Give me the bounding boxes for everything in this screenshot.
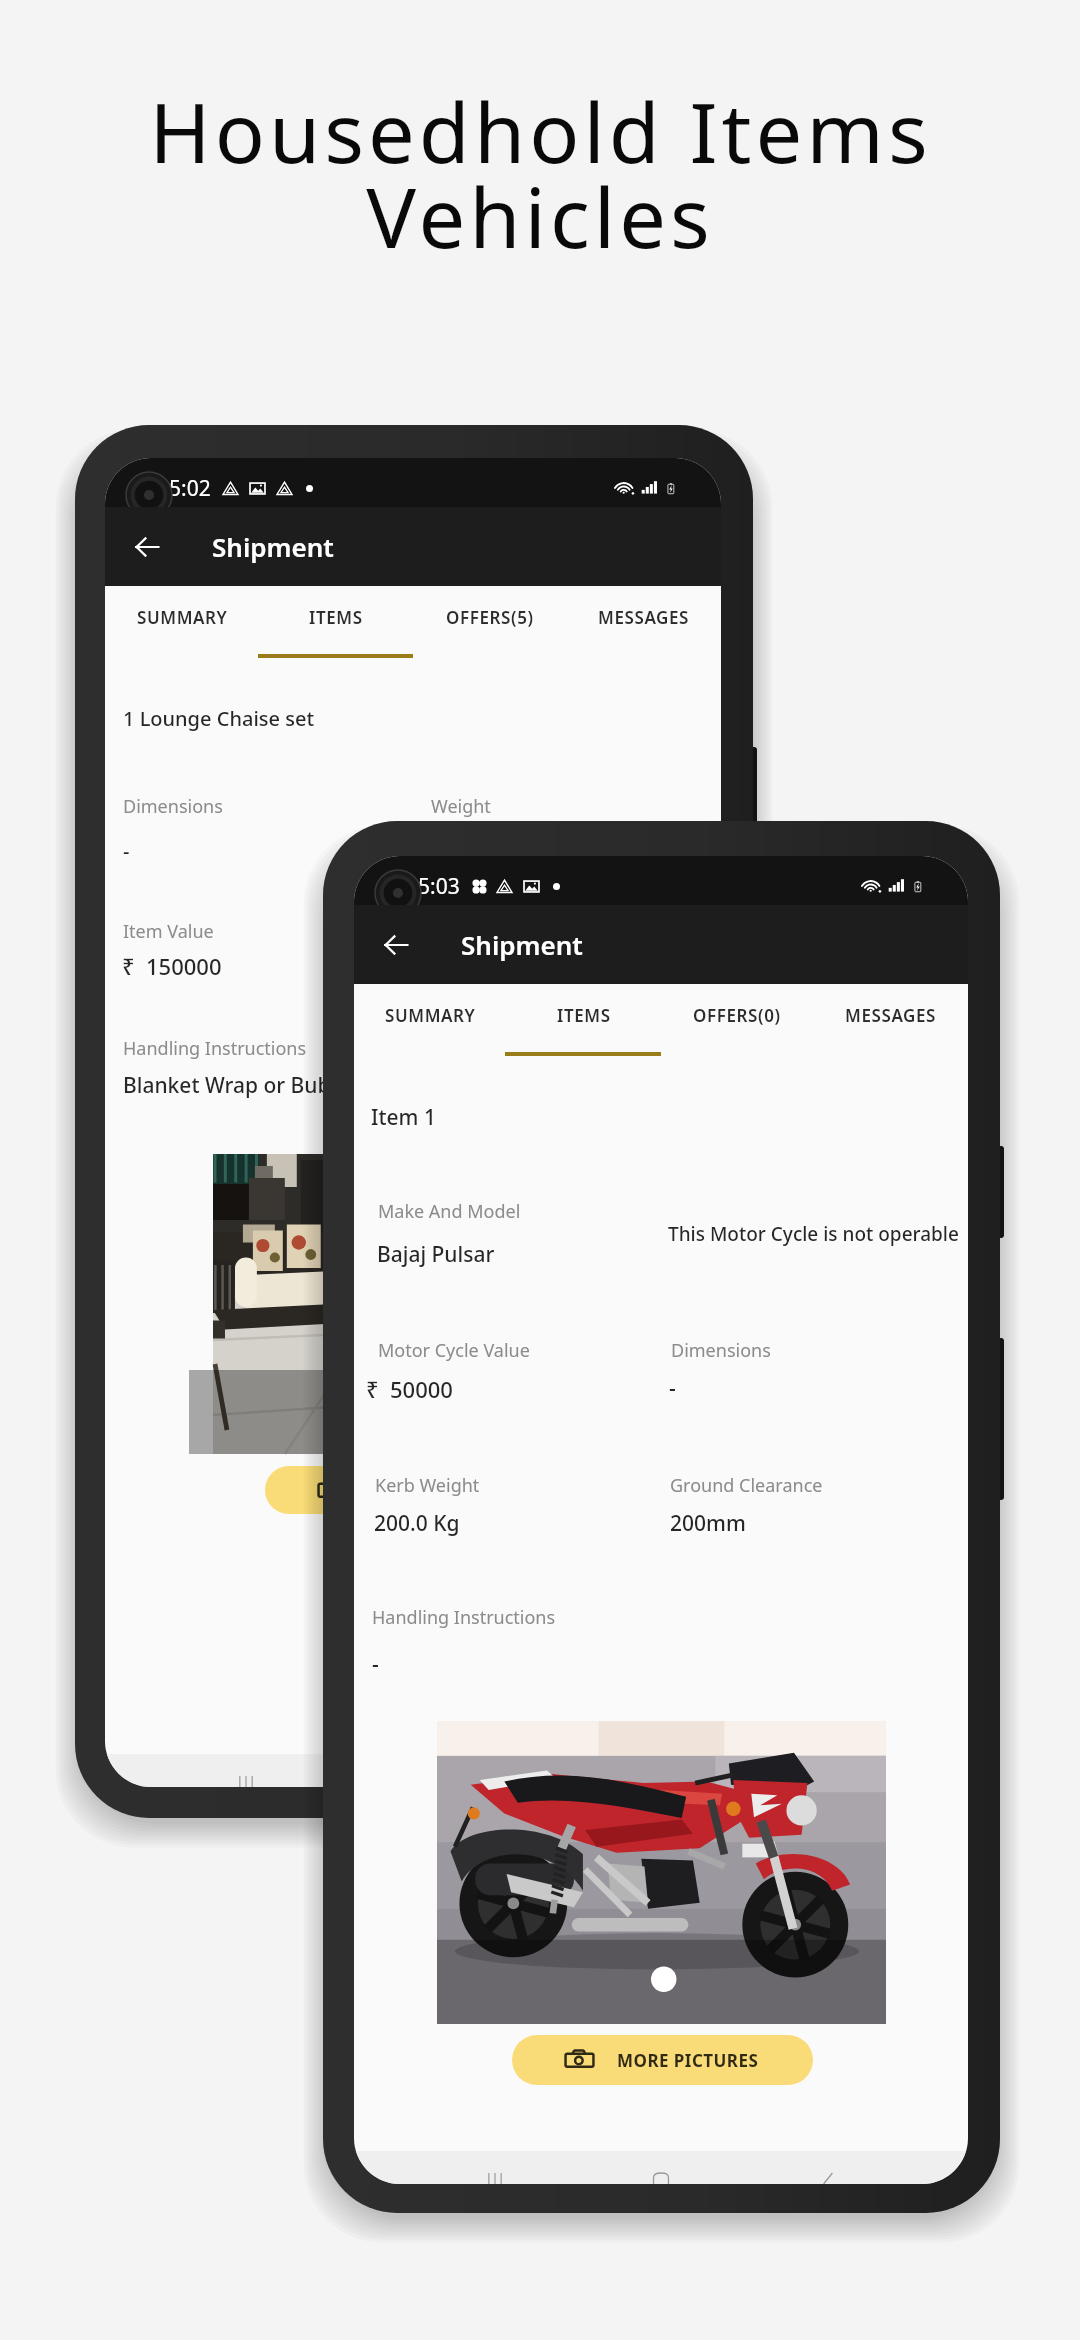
staticText: Housedhold Items: [149, 74, 932, 187]
staticText: SUMMARY: [385, 1004, 476, 1027]
staticText: ₹ 150000: [122, 951, 222, 981]
staticText: MORE PICTURES: [617, 2049, 759, 2072]
staticText: Kerb Weight: [375, 1473, 480, 1498]
button[interactable]: Back: [554, 1757, 606, 1787]
button[interactable]: ITEMS: [507, 984, 660, 1046]
button[interactable]: Back: [802, 2154, 854, 2184]
button[interactable]: Home: [387, 1757, 439, 1787]
staticText: ITEMS: [557, 1004, 611, 1027]
staticText: MORE PICTURES: [370, 1479, 512, 1502]
staticText: OFFERS(5): [446, 606, 534, 629]
staticText: 5:03: [418, 872, 460, 901]
staticText: -: [372, 1650, 379, 1679]
button[interactable]: Recents: [469, 2154, 521, 2184]
button[interactable]: Item photo: [213, 1154, 612, 1454]
button[interactable]: Back: [120, 520, 174, 574]
button[interactable]: MESSAGES: [567, 586, 721, 648]
staticText: Ground Clearance: [670, 1473, 823, 1498]
staticText: Bajaj Pulsar: [377, 1240, 495, 1269]
staticText: Vehicles: [366, 159, 714, 272]
button[interactable]: MESSAGES: [814, 984, 968, 1046]
button[interactable]: SUMMARY: [354, 984, 507, 1046]
staticText: Handling Instructions: [372, 1605, 556, 1630]
staticText: This Motor Cycle is not operable: [668, 1221, 959, 1247]
staticText: ₹ 50000: [366, 1374, 453, 1404]
staticText: Shipment: [461, 927, 583, 962]
staticText: OFFERS(0): [693, 1004, 781, 1027]
button[interactable]: MORE PICTURES: [512, 2035, 813, 2085]
staticText: -: [123, 837, 130, 864]
button[interactable]: SUMMARY: [105, 586, 259, 648]
button[interactable]: Motor cycle photo: [437, 1721, 886, 2024]
button[interactable]: ITEMS: [259, 586, 413, 648]
button[interactable]: Back: [369, 918, 423, 972]
button[interactable]: Home: [635, 2154, 687, 2184]
staticText: Item Value: [123, 919, 214, 944]
staticText: MESSAGES: [845, 1004, 937, 1027]
staticText: ITEMS: [309, 606, 363, 629]
staticText: 5:02: [169, 474, 211, 503]
staticText: MESSAGES: [598, 606, 690, 629]
staticText: Dimensions: [671, 1338, 771, 1363]
staticText: 200mm: [670, 1509, 746, 1538]
staticText: Item 1: [371, 1103, 436, 1132]
staticText: Shipment: [212, 529, 334, 564]
button[interactable]: OFFERS(5): [413, 586, 567, 648]
staticText: -: [669, 1374, 676, 1403]
staticText: Blanket Wrap or Bubble: [123, 1071, 362, 1100]
button[interactable]: MORE PICTURES: [265, 1466, 561, 1514]
staticText: 1 Lounge Chaise set: [123, 705, 315, 732]
staticText: Motor Cycle Value: [378, 1338, 530, 1363]
staticText: 200.0 Kg: [374, 1509, 460, 1538]
staticText: Dimensions: [123, 794, 223, 819]
button[interactable]: OFFERS(0): [660, 984, 814, 1046]
staticText: Handling Instructions: [123, 1036, 307, 1061]
staticText: Weight: [431, 794, 491, 819]
button[interactable]: Recents: [220, 1757, 272, 1787]
staticText: Make And Model: [378, 1199, 521, 1224]
staticText: SUMMARY: [137, 606, 228, 629]
